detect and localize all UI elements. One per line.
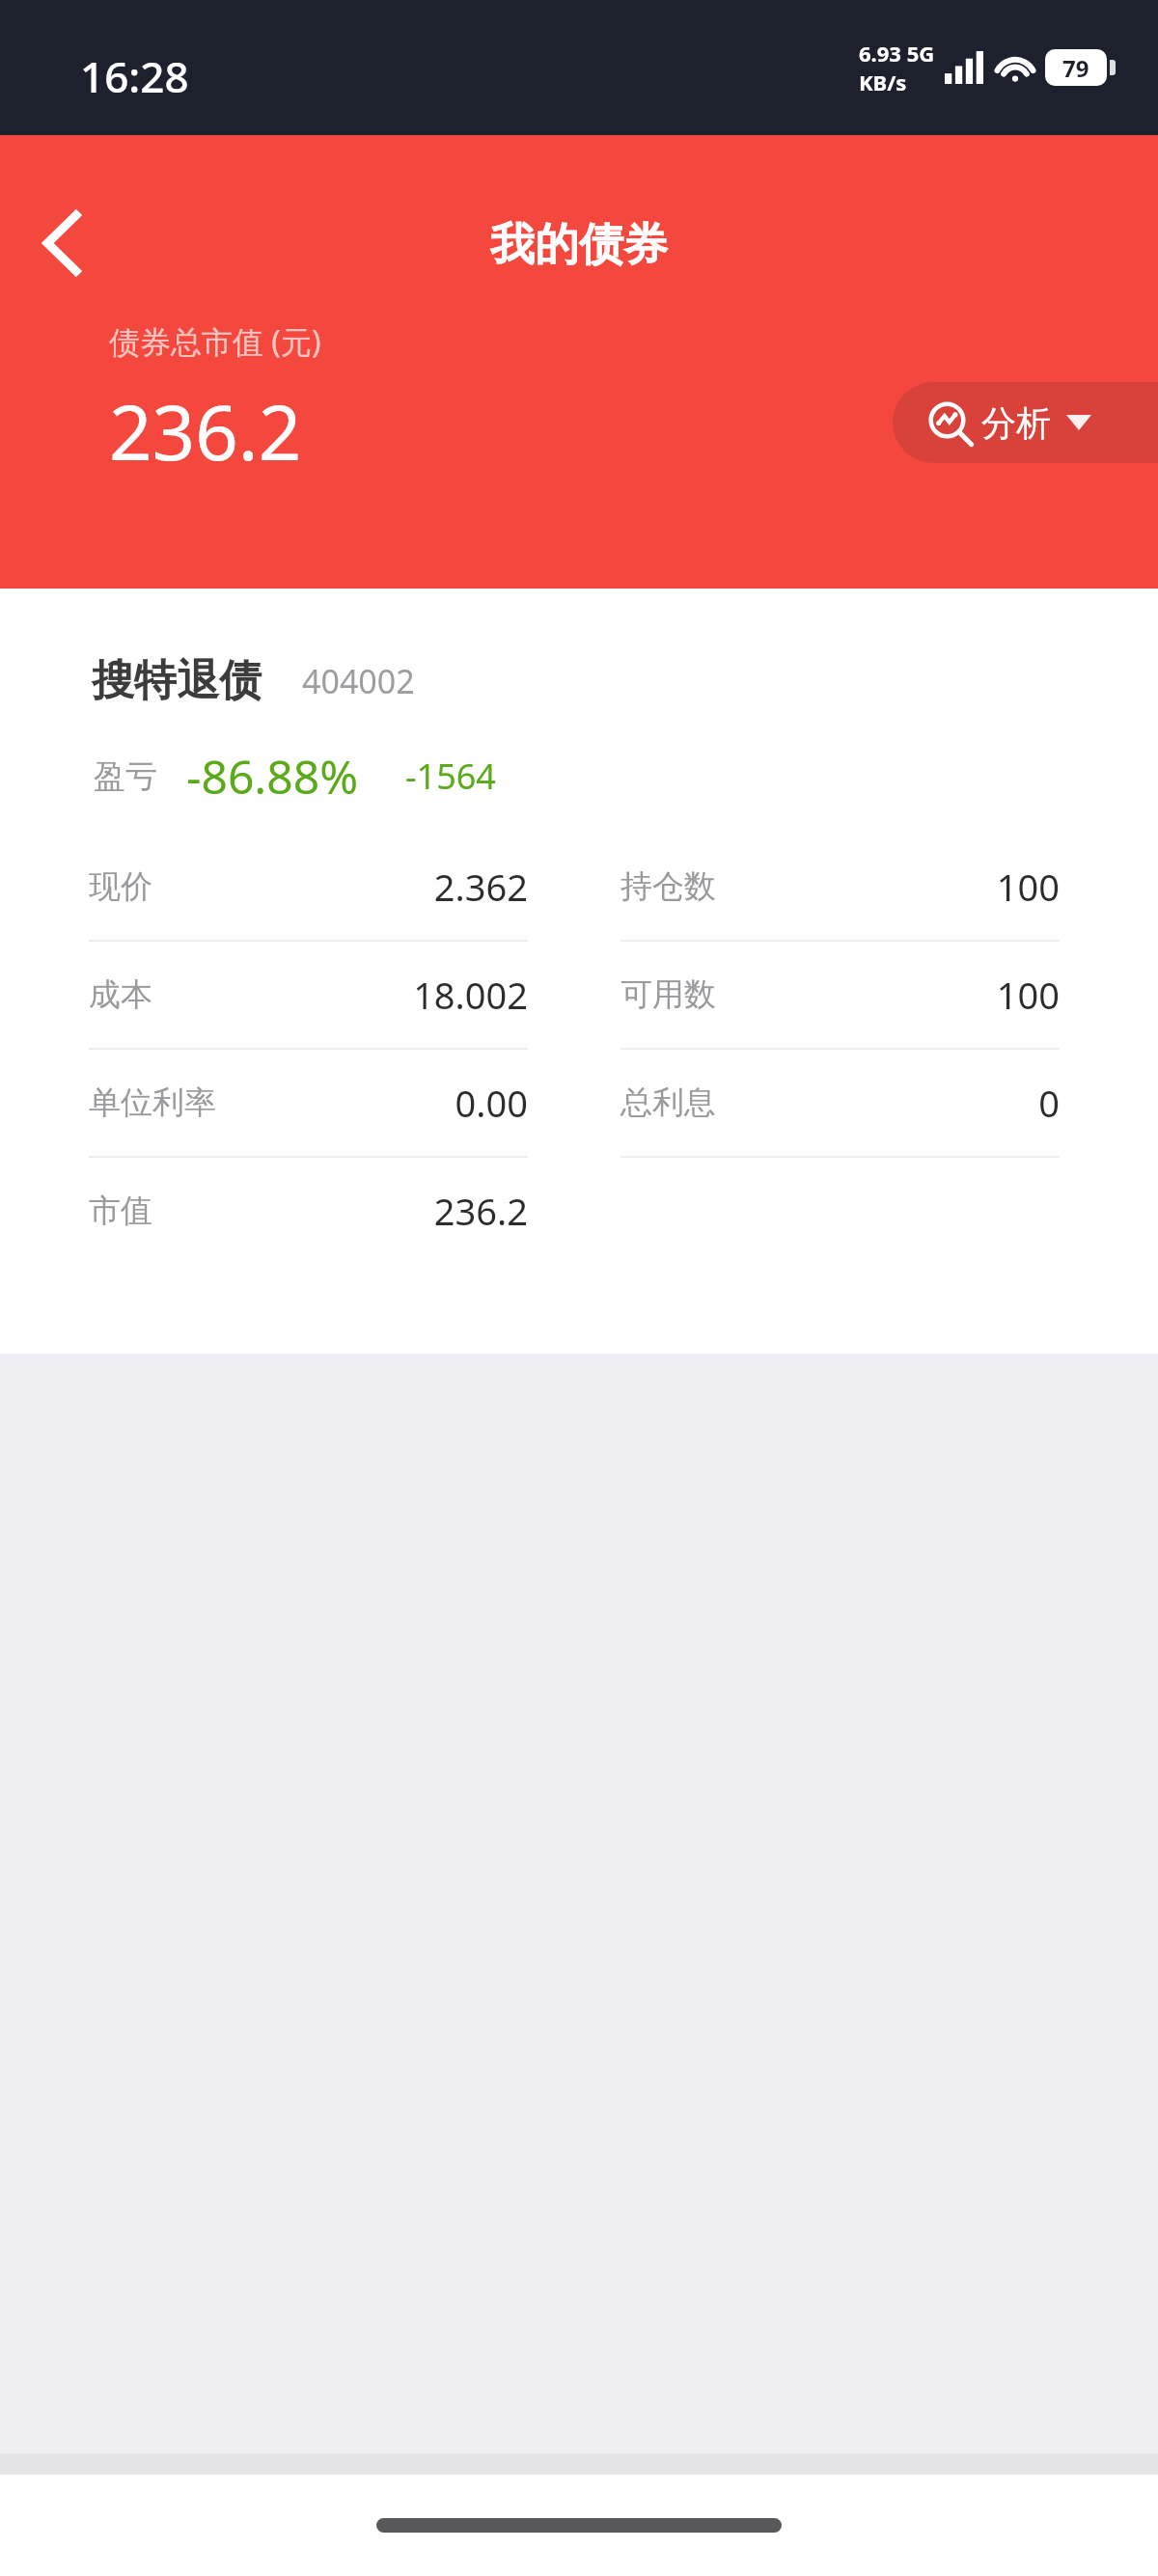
staticText: 可用数 (620, 974, 716, 1015)
staticText: 6.93 5G (859, 39, 935, 68)
staticText: -86.88% (186, 745, 359, 808)
staticText: 债券总市值 (元) (109, 320, 321, 363)
staticText: 236.2 (109, 380, 302, 482)
staticText: 分析 (981, 401, 1051, 445)
button[interactable]: 成本 (89, 968, 528, 1022)
staticText: 成本 (89, 974, 152, 1015)
button[interactable]: 现价 (89, 860, 528, 914)
staticText: 236.2 (152, 1186, 528, 1236)
staticText: 100 (716, 970, 1060, 1020)
staticText: 盈亏 (94, 756, 157, 797)
button[interactable]: 市值 (89, 1184, 528, 1238)
staticText: 总利息 (620, 1082, 716, 1123)
staticText: 0.00 (216, 1078, 528, 1128)
staticText: 0 (716, 1078, 1060, 1128)
staticText: 404002 (302, 659, 415, 703)
button[interactable]: 分析 (893, 382, 1158, 463)
staticText: 持仓数 (620, 866, 716, 907)
staticText: 16:28 (80, 47, 189, 105)
staticText: -1564 (405, 753, 496, 800)
staticText: 79 (1062, 52, 1089, 84)
staticText: KB/s (859, 68, 907, 96)
staticText: 2.362 (152, 862, 528, 912)
staticText: 18.002 (152, 970, 528, 1020)
staticText: 单位利率 (89, 1082, 216, 1123)
staticText: 搜特退债 (92, 654, 262, 707)
staticText: 100 (716, 862, 1060, 912)
button[interactable]: 总利息 (620, 1076, 1060, 1130)
staticText: 现价 (89, 866, 152, 907)
staticText: 市值 (89, 1191, 152, 1231)
button[interactable]: 持仓数 (620, 860, 1060, 914)
button[interactable]: Back (14, 193, 114, 293)
button[interactable]: 单位利率 (89, 1076, 528, 1130)
staticText: 我的债券 (0, 217, 1158, 273)
button[interactable]: 可用数 (620, 968, 1060, 1022)
